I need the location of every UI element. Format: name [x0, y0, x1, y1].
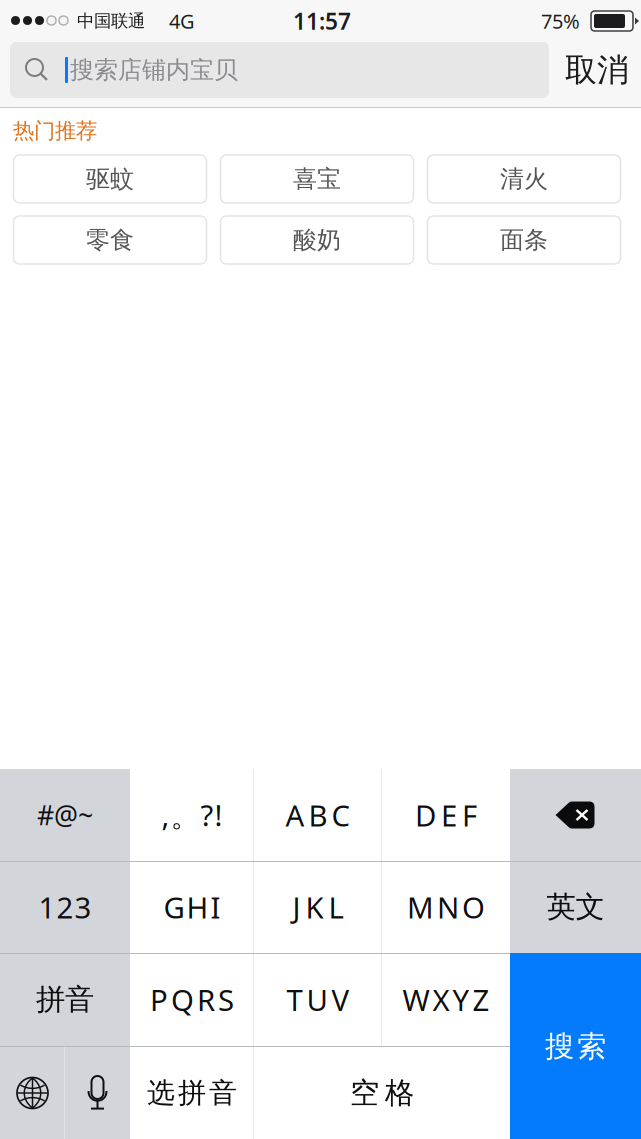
staticText: GHI	[163, 887, 220, 926]
button[interactable]: MNO	[382, 861, 510, 953]
staticText: ,。?!	[161, 795, 222, 834]
button[interactable]: WXYZ	[382, 953, 510, 1046]
button[interactable]: 搜索	[510, 953, 641, 1139]
staticText: MNO	[407, 887, 485, 926]
button[interactable]: PQRS	[130, 953, 254, 1046]
button[interactable]: JKL	[254, 861, 382, 953]
staticText: 空格	[350, 1075, 414, 1111]
button[interactable]: ,。?!	[130, 769, 254, 861]
button[interactable]: ABC	[254, 769, 382, 861]
button[interactable]: Delete	[510, 769, 641, 861]
staticText: JKL	[292, 887, 343, 926]
staticText: 取消	[565, 50, 629, 90]
button[interactable]: 喜宝	[220, 155, 413, 203]
staticText: 喜宝	[293, 164, 341, 194]
staticText: 零食	[86, 225, 134, 255]
button[interactable]: 取消	[557, 42, 637, 98]
staticText: PQRS	[150, 980, 234, 1019]
button[interactable]: GHI	[130, 861, 254, 953]
staticText: 酸奶	[293, 225, 341, 255]
button[interactable]: 拼音	[0, 953, 130, 1046]
button[interactable]: #@~	[0, 769, 130, 861]
staticText: 驱蚊	[86, 164, 134, 194]
staticText: WXYZ	[402, 980, 489, 1019]
button[interactable]: 选拼音	[130, 1046, 254, 1139]
button[interactable]: 123	[0, 861, 130, 953]
staticText: 面条	[500, 225, 548, 255]
staticText: 中国联通	[77, 10, 145, 32]
button[interactable]: 面条	[427, 216, 620, 264]
button[interactable]: 英文	[510, 861, 641, 953]
staticText: 123	[38, 887, 91, 926]
staticText: 搜索	[545, 1028, 606, 1064]
button[interactable]: 驱蚊	[13, 155, 206, 203]
button[interactable]: DEF	[382, 769, 510, 861]
button[interactable]: Dictate	[65, 1046, 130, 1139]
staticText: 选拼音	[147, 1076, 237, 1110]
staticText: #@~	[37, 797, 93, 833]
button[interactable]: 清火	[427, 155, 620, 203]
staticText: 热门推荐	[13, 118, 97, 144]
staticText: 英文	[546, 889, 604, 925]
button[interactable]: TUV	[254, 953, 382, 1046]
staticText: ABC	[285, 795, 350, 834]
button[interactable]: 酸奶	[220, 216, 413, 264]
staticText: 75%	[541, 8, 580, 34]
staticText: 清火	[500, 164, 548, 194]
staticText: DEF	[415, 795, 477, 834]
staticText: 11:57	[293, 6, 351, 36]
staticText: 搜索店铺内宝贝	[70, 55, 238, 85]
staticText: 拼音	[36, 981, 94, 1017]
button[interactable]: Next keyboard	[0, 1046, 65, 1139]
button[interactable]: 零食	[13, 216, 206, 264]
button[interactable]: 空格	[254, 1046, 510, 1139]
staticText: TUV	[286, 980, 349, 1019]
staticText: 4G	[169, 8, 195, 34]
